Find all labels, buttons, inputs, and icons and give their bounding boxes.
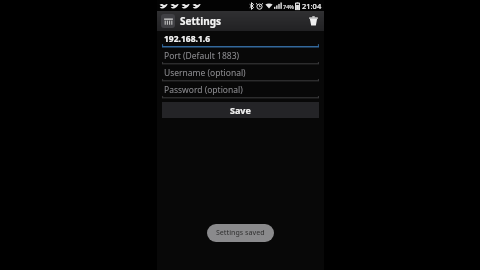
staticText: Settings saved xyxy=(216,228,265,238)
button[interactable]: Save xyxy=(162,102,319,118)
staticText: 74% xyxy=(283,3,294,10)
staticText: Settings xyxy=(180,14,221,28)
staticText: Port (Default 1883) xyxy=(164,50,240,62)
button[interactable]: 192.168.1.6 xyxy=(162,32,319,49)
button[interactable]: App icon xyxy=(161,14,175,28)
staticText: 192.168.1.6 xyxy=(164,33,211,45)
staticText: Password (optional) xyxy=(164,84,243,96)
button[interactable]: Username (optional) xyxy=(162,66,319,83)
button[interactable]: Password (optional) xyxy=(162,83,319,100)
staticText: Username (optional) xyxy=(164,67,246,79)
staticText: 21:04 xyxy=(302,1,322,11)
staticText: Save xyxy=(230,104,251,116)
button[interactable]: Delete xyxy=(305,13,321,29)
button[interactable]: Port (Default 1883) xyxy=(162,49,319,66)
